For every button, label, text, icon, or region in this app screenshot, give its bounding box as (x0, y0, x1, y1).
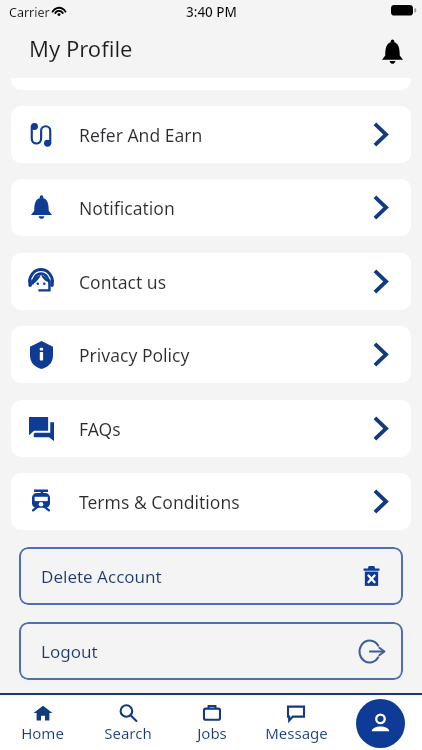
button[interactable]: FAQs (11, 400, 411, 457)
staticText: Message (265, 723, 328, 743)
button[interactable]: Message (254, 695, 338, 750)
button[interactable]: Jobs (170, 695, 254, 750)
staticText: My Profile (29, 33, 133, 63)
staticText: Search (104, 723, 152, 743)
button[interactable]: Notifications (373, 33, 411, 71)
staticText: Logout (41, 640, 98, 663)
button[interactable]: Search (85, 695, 170, 750)
staticText: Carrier (9, 4, 50, 21)
staticText: Delete Account (41, 565, 162, 588)
button[interactable]: Contact us (11, 253, 411, 310)
staticText: Notification (79, 196, 175, 220)
staticText: Jobs (197, 723, 227, 743)
staticText: Terms & Conditions (79, 490, 240, 514)
button[interactable]: Refer And Earn (11, 106, 411, 163)
staticText: Privacy Policy (79, 343, 190, 367)
button[interactable]: Home (0, 695, 85, 750)
staticText: Contact us (79, 270, 167, 294)
button[interactable]: Delete Account (19, 547, 403, 605)
button[interactable]: Notification (11, 179, 411, 236)
button[interactable]: Privacy Policy (11, 326, 411, 383)
staticText: 3:40 PM (186, 3, 237, 21)
button[interactable]: Profile (356, 699, 405, 748)
staticText: Home (21, 723, 64, 743)
staticText: FAQs (79, 417, 121, 441)
button[interactable]: Terms & Conditions (11, 473, 411, 530)
button[interactable]: Logout (19, 622, 403, 680)
staticText: Refer And Earn (79, 123, 203, 147)
